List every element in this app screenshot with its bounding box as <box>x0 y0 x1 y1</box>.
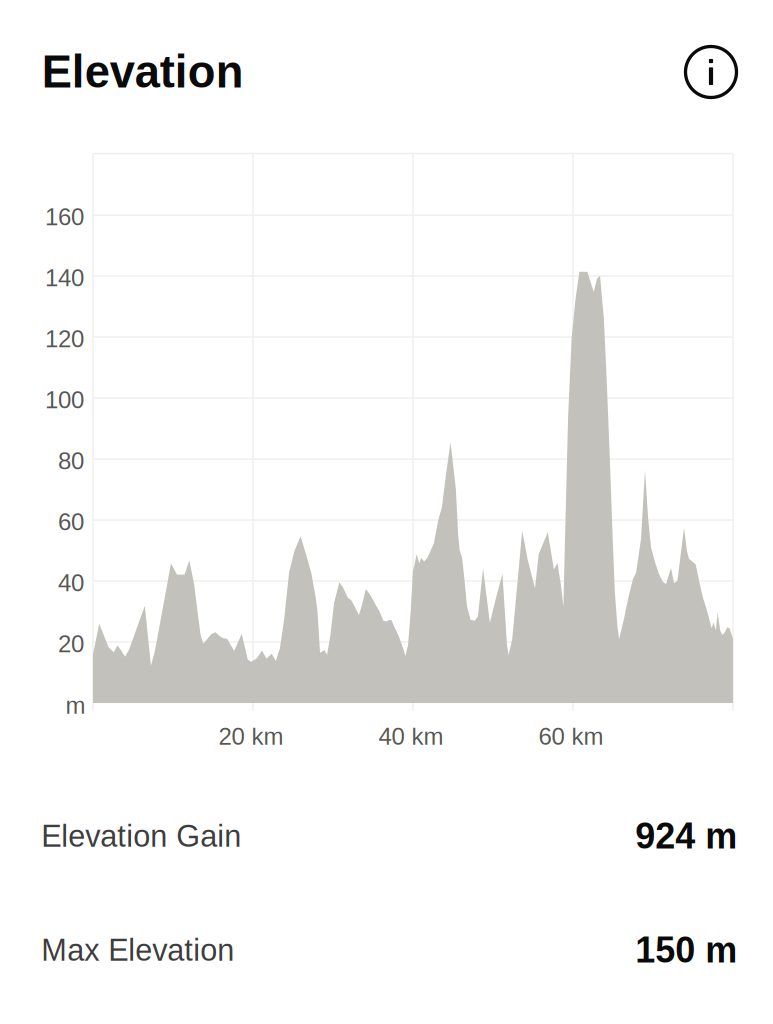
staticText: 140 <box>45 264 84 291</box>
staticText: 120 <box>45 325 84 352</box>
staticText: 100 <box>45 386 84 413</box>
staticText: Max Elevation <box>41 933 234 967</box>
staticText: 40 <box>58 569 84 596</box>
staticText: 60 <box>58 508 84 535</box>
staticText: Elevation <box>42 46 244 97</box>
staticText: m <box>65 692 85 719</box>
staticText: 60 km <box>538 723 603 750</box>
staticText: 80 <box>58 447 84 474</box>
staticText: 924 m <box>635 816 737 856</box>
staticText: 160 <box>45 203 84 230</box>
staticText: 20 km <box>218 723 283 750</box>
staticText: Elevation Gain <box>41 819 241 853</box>
staticText: 150 m <box>635 930 737 970</box>
staticText: 20 <box>58 630 84 657</box>
staticText: 40 km <box>378 723 443 750</box>
button[interactable]: Info <box>680 41 742 103</box>
